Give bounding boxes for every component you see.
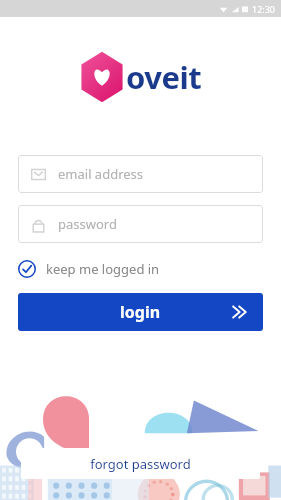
staticText: email address bbox=[58, 165, 144, 183]
staticText: oveit bbox=[126, 56, 202, 98]
button[interactable]: forgot password bbox=[21, 448, 260, 479]
staticText: 12:30 bbox=[252, 3, 276, 15]
staticText: keep me logged in bbox=[46, 260, 160, 278]
button[interactable]: login bbox=[18, 293, 263, 331]
staticText: login bbox=[120, 301, 161, 323]
button[interactable]: keep me logged in bbox=[18, 257, 160, 281]
staticText: password bbox=[58, 215, 117, 233]
button[interactable]: password bbox=[18, 205, 263, 243]
staticText: forgot password bbox=[90, 455, 191, 473]
button[interactable]: email address bbox=[18, 155, 263, 193]
